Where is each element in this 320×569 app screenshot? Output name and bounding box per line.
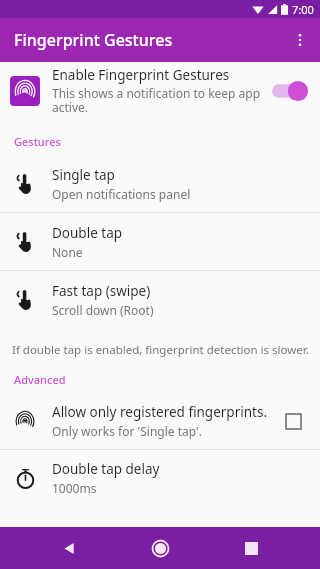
staticText: Single tap: [52, 166, 115, 184]
staticText: This shows a notification to keep app ac…: [52, 85, 261, 116]
staticText: 1000ms: [52, 480, 97, 496]
button[interactable]: Allow only registered fingerprints.: [0, 393, 320, 449]
staticText: Allow only registered fingerprints.: [52, 403, 268, 421]
button[interactable]: Allow only registered fingerprints check…: [276, 404, 310, 438]
button[interactable]: Back: [47, 527, 91, 569]
staticText: Fast tap (swipe): [52, 282, 151, 300]
button[interactable]: Home: [138, 527, 182, 569]
staticText: Enable Fingerprint Gestures: [52, 66, 230, 84]
staticText: Gestures: [14, 134, 61, 149]
staticText: Scroll down (Root): [52, 302, 154, 318]
staticText: None: [52, 244, 83, 260]
button[interactable]: Enable Fingerprint Gestures toggle: [270, 76, 310, 106]
staticText: Double tap: [52, 224, 123, 242]
button[interactable]: Fast tap (swipe): [0, 271, 320, 328]
button[interactable]: Single tap: [0, 155, 320, 212]
button[interactable]: Double tap delay: [0, 450, 320, 506]
staticText: Fingerprint Gestures: [14, 29, 173, 51]
staticText: Advanced: [14, 372, 66, 387]
button[interactable]: More options: [280, 20, 320, 60]
staticText: Open notifications panel: [52, 186, 191, 202]
button[interactable]: Recent apps: [229, 527, 273, 569]
staticText: 7:00: [292, 2, 314, 17]
button[interactable]: Double tap: [0, 213, 320, 270]
button[interactable]: Enable Fingerprint Gestures: [0, 62, 320, 120]
staticText: Only works for 'Single tap'.: [52, 423, 202, 439]
staticText: Double tap delay: [52, 460, 160, 478]
staticText: If double tap is enabled, fingerprint de…: [12, 342, 309, 358]
